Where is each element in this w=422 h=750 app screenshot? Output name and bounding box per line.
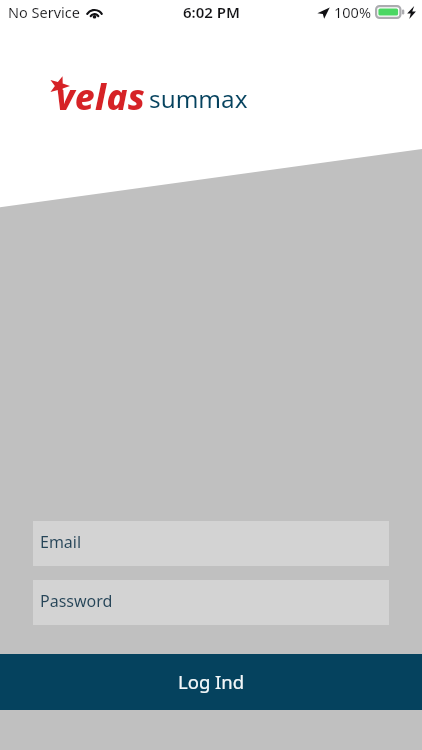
staticText: 100% xyxy=(334,2,371,22)
button[interactable]: Email xyxy=(33,521,389,566)
button[interactable]: Log Ind xyxy=(0,654,422,710)
staticText: 6:02 PM xyxy=(183,2,240,22)
staticText: velas xyxy=(56,73,146,121)
staticText: No Service xyxy=(8,2,80,22)
staticText: summax xyxy=(149,82,248,115)
button[interactable]: Password xyxy=(33,580,389,625)
staticText: Log Ind xyxy=(178,669,245,694)
staticText: Password xyxy=(40,590,113,612)
staticText: Email xyxy=(40,531,82,553)
